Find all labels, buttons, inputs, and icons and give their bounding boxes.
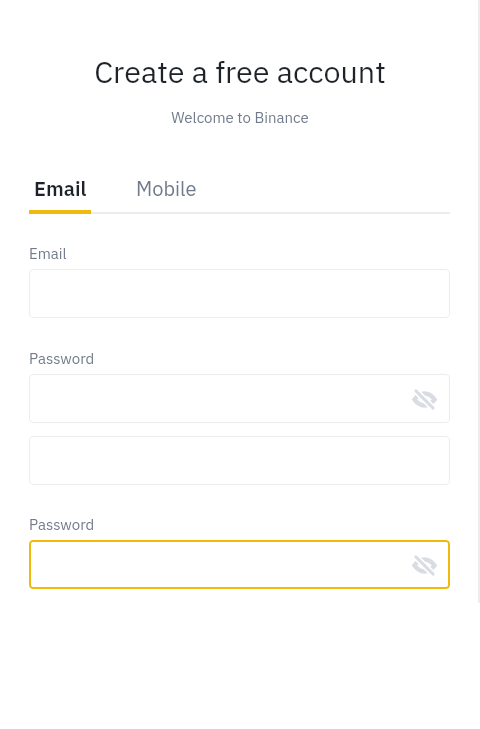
staticText: Welcome to Binance [0, 108, 480, 128]
button[interactable]: Toggle password visibility [29, 374, 450, 423]
button[interactable]: Toggle password visibility [29, 540, 450, 589]
staticText: Create a free account [0, 52, 480, 92]
button[interactable]: Toggle password visibility [411, 386, 437, 412]
button[interactable]: Email [29, 175, 91, 214]
button[interactable]: Toggle password visibility [411, 552, 437, 578]
button[interactable] [29, 436, 450, 485]
staticText: Mobile [136, 175, 197, 201]
staticText: Email [34, 175, 87, 201]
staticText: Password [29, 515, 95, 535]
staticText: Password [29, 349, 95, 369]
staticText: Email [29, 244, 67, 264]
button[interactable]: Mobile [131, 175, 201, 214]
button[interactable] [29, 269, 450, 318]
